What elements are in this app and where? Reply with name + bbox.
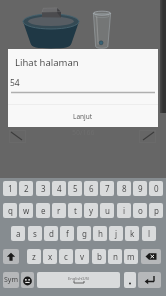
button[interactable]: u	[100, 203, 114, 218]
staticText: r	[57, 205, 61, 216]
button[interactable]: w	[19, 203, 33, 218]
button[interactable]: d	[44, 226, 58, 241]
staticText: l	[148, 228, 151, 239]
staticText: w	[23, 205, 30, 216]
button[interactable]: 5	[68, 181, 82, 196]
staticText: y	[89, 205, 94, 216]
button[interactable]: 1	[3, 181, 17, 196]
button[interactable]: 9	[133, 181, 147, 196]
button[interactable]: Previous page	[9, 130, 26, 143]
staticText: n	[113, 251, 118, 262]
button[interactable]: t	[68, 203, 82, 218]
staticText: 5	[73, 183, 78, 194]
button[interactable]: 6	[84, 181, 98, 196]
staticText: t	[74, 205, 77, 216]
button[interactable]: i	[117, 203, 131, 218]
button[interactable]: m	[124, 249, 138, 264]
staticText: j	[115, 228, 118, 239]
button[interactable]: a	[11, 226, 25, 241]
staticText: Lanjut	[73, 112, 93, 121]
staticText: d	[49, 228, 54, 239]
button[interactable]: Backspace	[141, 249, 161, 264]
staticText: 1	[8, 183, 13, 194]
button[interactable]: v	[75, 249, 89, 264]
staticText: m	[127, 251, 135, 262]
staticText: 4	[57, 183, 62, 194]
button[interactable]: f	[60, 226, 74, 241]
button[interactable]: r	[52, 203, 66, 218]
staticText: k	[130, 228, 135, 239]
staticText: h	[98, 228, 103, 239]
staticText: q	[8, 205, 13, 216]
button[interactable]: Enter	[138, 272, 161, 288]
button[interactable]: q	[3, 203, 17, 218]
button[interactable]: e	[36, 203, 50, 218]
button[interactable]: n	[108, 249, 122, 264]
staticText: a	[16, 228, 21, 239]
staticText: 9	[138, 183, 143, 194]
staticText: 3	[41, 183, 46, 194]
button[interactable]: 0	[149, 181, 163, 196]
staticText: 8	[122, 183, 127, 194]
button[interactable]: Lanjut	[8, 105, 158, 127]
button[interactable]: k	[125, 226, 139, 241]
button[interactable]: 8	[117, 181, 131, 196]
button[interactable]: Space	[37, 272, 120, 288]
staticText: c	[64, 251, 68, 262]
button[interactable]: l	[142, 226, 156, 241]
button[interactable]: o	[133, 203, 147, 218]
staticText: g	[82, 228, 87, 239]
button[interactable]: j	[109, 226, 123, 241]
button[interactable]: g	[77, 226, 91, 241]
button[interactable]: 7	[100, 181, 114, 196]
button[interactable]: s	[28, 226, 42, 241]
button[interactable]: y	[84, 203, 98, 218]
staticText: u	[105, 205, 110, 216]
staticText: English(US)	[68, 276, 90, 281]
staticText: s	[33, 228, 37, 239]
staticText: f	[66, 228, 69, 239]
staticText: e	[41, 205, 46, 216]
staticText: Lihat halaman	[15, 56, 79, 69]
staticText: z	[32, 251, 36, 262]
staticText: x	[48, 251, 53, 262]
button[interactable]: 2	[19, 181, 33, 196]
button[interactable]: b	[92, 249, 106, 264]
staticText: p	[154, 205, 159, 216]
button[interactable]: Period	[124, 272, 136, 288]
button[interactable]: h	[93, 226, 107, 241]
button[interactable]: 3	[36, 181, 50, 196]
button[interactable]: p	[149, 203, 163, 218]
button[interactable]: Emoji	[21, 272, 34, 288]
button[interactable]: z	[27, 249, 41, 264]
staticText: 6	[89, 183, 94, 194]
staticText: 2	[24, 183, 29, 194]
staticText: b	[97, 251, 102, 262]
staticText: o	[138, 205, 143, 216]
staticText: 54	[10, 77, 20, 89]
button[interactable]: 4	[52, 181, 66, 196]
staticText: Sym	[4, 275, 18, 285]
staticText: 7	[105, 183, 110, 194]
button[interactable]: Next page	[139, 130, 156, 143]
button[interactable]: c	[59, 249, 73, 264]
button[interactable]: Sym	[3, 272, 19, 288]
staticText: 0	[154, 183, 159, 194]
button[interactable]: Shift	[3, 249, 19, 264]
button[interactable]: x	[43, 249, 57, 264]
staticText: i	[123, 205, 126, 216]
staticText: v	[80, 251, 85, 262]
